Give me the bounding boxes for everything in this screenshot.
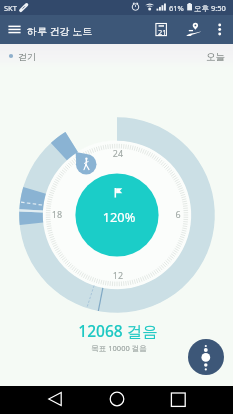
staticText: 하루 건강 노트 xyxy=(27,24,93,38)
staticText: 목표 10000 걸음 xyxy=(9,343,229,353)
staticText: 오후 9:50 xyxy=(194,3,226,13)
staticText: 18 xyxy=(37,208,77,220)
button[interactable]: Calendar xyxy=(149,17,173,41)
button[interactable]: Open navigation menu xyxy=(2,17,27,42)
staticText: 12 xyxy=(98,269,138,281)
staticText: 120% xyxy=(79,208,159,225)
button[interactable]: Map xyxy=(182,17,206,41)
button[interactable]: 오늘 xyxy=(206,51,225,63)
button[interactable]: Recent apps xyxy=(164,386,192,414)
button[interactable]: More actions xyxy=(188,339,224,375)
staticText: 24 xyxy=(98,147,138,159)
staticText: 오늘 xyxy=(206,51,225,63)
staticText: 6 xyxy=(158,208,198,220)
staticText: 걷기 xyxy=(18,51,36,62)
staticText: 12068 걸음 xyxy=(8,320,228,341)
button[interactable]: Back xyxy=(41,386,69,414)
button[interactable]: More options xyxy=(208,17,232,41)
staticText: 21 xyxy=(158,27,167,37)
staticText: 61% xyxy=(169,3,184,13)
button[interactable]: Home xyxy=(103,386,131,414)
button[interactable]: 걷기 xyxy=(0,46,233,66)
staticText: SKT xyxy=(4,3,17,13)
